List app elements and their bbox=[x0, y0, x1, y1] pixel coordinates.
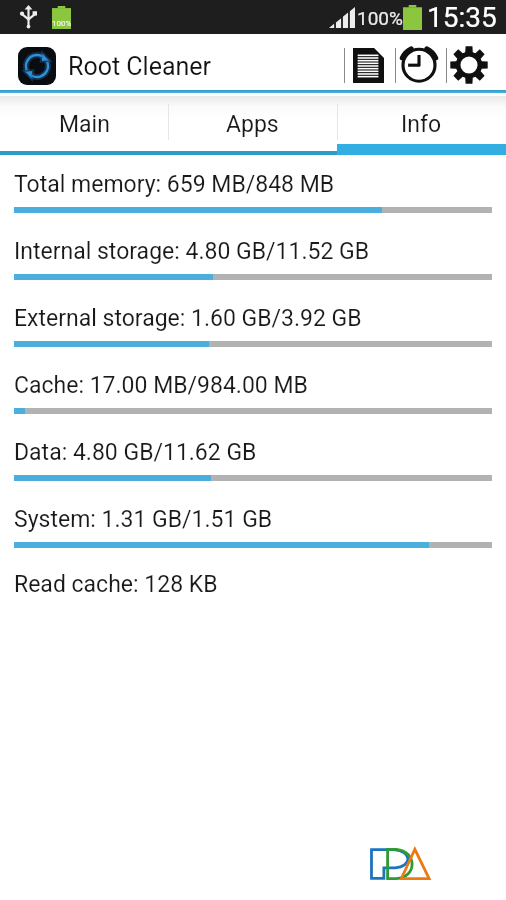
staticText: 15:35 bbox=[427, 1, 497, 34]
button[interactable]: Internal storage: 4.80 GB/11.52 GB bbox=[0, 222, 506, 289]
staticText: System: 1.31 GB/1.51 GB bbox=[14, 506, 273, 533]
staticText: Main bbox=[59, 111, 110, 138]
staticText: Internal storage: 4.80 GB/11.52 GB bbox=[14, 238, 370, 265]
staticText: 100% bbox=[357, 7, 403, 29]
button[interactable]: Log bbox=[347, 42, 389, 88]
staticText: Cache: 17.00 MB/984.00 MB bbox=[14, 372, 308, 399]
button[interactable]: System: 1.31 GB/1.51 GB bbox=[0, 490, 506, 557]
staticText: Root Cleaner bbox=[68, 52, 212, 81]
button[interactable]: Data: 4.80 GB/11.62 GB bbox=[0, 423, 506, 490]
button[interactable]: Root Cleaner bbox=[12, 38, 232, 89]
staticText: External storage: 1.60 GB/3.92 GB bbox=[14, 305, 362, 332]
button[interactable]: External storage: 1.60 GB/3.92 GB bbox=[0, 289, 506, 356]
staticText: Apps bbox=[226, 111, 279, 138]
button[interactable]: Apps bbox=[168, 96, 337, 155]
button[interactable]: Cache: 17.00 MB/984.00 MB bbox=[0, 356, 506, 423]
staticText: Info bbox=[401, 111, 442, 138]
button[interactable]: Settings bbox=[448, 42, 490, 88]
button[interactable]: Scheduler bbox=[398, 39, 440, 85]
staticText: Total memory: 659 MB/848 MB bbox=[14, 171, 335, 198]
button[interactable]: Read cache: 128 KB bbox=[0, 557, 506, 617]
button[interactable]: Main bbox=[0, 96, 168, 155]
staticText: Read cache: 128 KB bbox=[14, 571, 218, 598]
button[interactable]: Info bbox=[337, 96, 506, 155]
button[interactable]: Total memory: 659 MB/848 MB bbox=[0, 155, 506, 222]
staticText: Data: 4.80 GB/11.62 GB bbox=[14, 439, 257, 466]
staticText: 100% bbox=[52, 19, 71, 28]
